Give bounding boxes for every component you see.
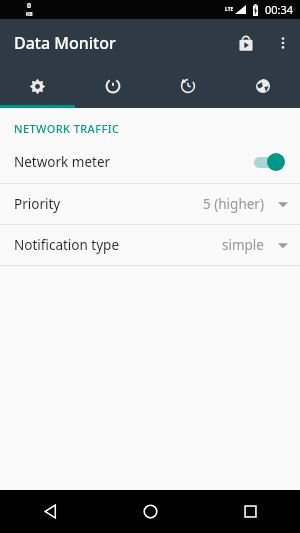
staticText: KB	[26, 11, 33, 18]
button[interactable]: Notification type	[0, 225, 300, 265]
button[interactable]: Sync	[75, 67, 150, 108]
button[interactable]: Play Store	[226, 23, 266, 63]
button[interactable]: Priority	[0, 184, 300, 224]
staticText: 0	[27, 1, 32, 11]
staticText: Data Monitor	[14, 32, 116, 54]
button[interactable]: Settings	[0, 67, 75, 108]
staticText: NETWORK TRAFFIC	[14, 121, 120, 136]
staticText: LTE	[225, 6, 234, 13]
button[interactable]: Network	[225, 67, 300, 108]
button[interactable]: Back	[0, 490, 100, 533]
staticText: 00:34	[265, 2, 294, 17]
other: Network meter toggle	[252, 152, 286, 172]
staticText: Notification type	[14, 236, 222, 254]
button[interactable]: More options	[266, 26, 300, 60]
button[interactable]: History	[150, 67, 225, 108]
staticText: simple	[222, 236, 264, 254]
button[interactable]: Network meter	[0, 141, 300, 183]
button[interactable]: Recents	[200, 490, 300, 533]
staticText: 5 (higher)	[203, 195, 264, 213]
staticText: Priority	[14, 195, 203, 213]
button[interactable]: Home	[100, 490, 200, 533]
staticText: Network meter	[14, 153, 252, 171]
